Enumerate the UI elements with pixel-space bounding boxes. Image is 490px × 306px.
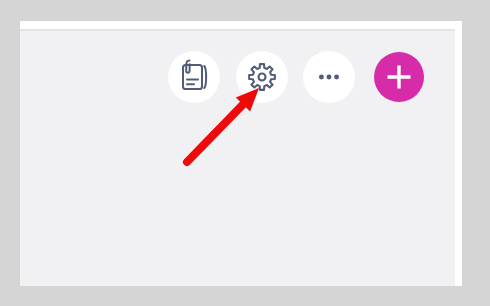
button[interactable]: Settings: [236, 51, 288, 103]
button[interactable]: More options: [303, 51, 355, 103]
button[interactable]: Notes: [168, 51, 220, 103]
button[interactable]: Add: [374, 52, 424, 102]
